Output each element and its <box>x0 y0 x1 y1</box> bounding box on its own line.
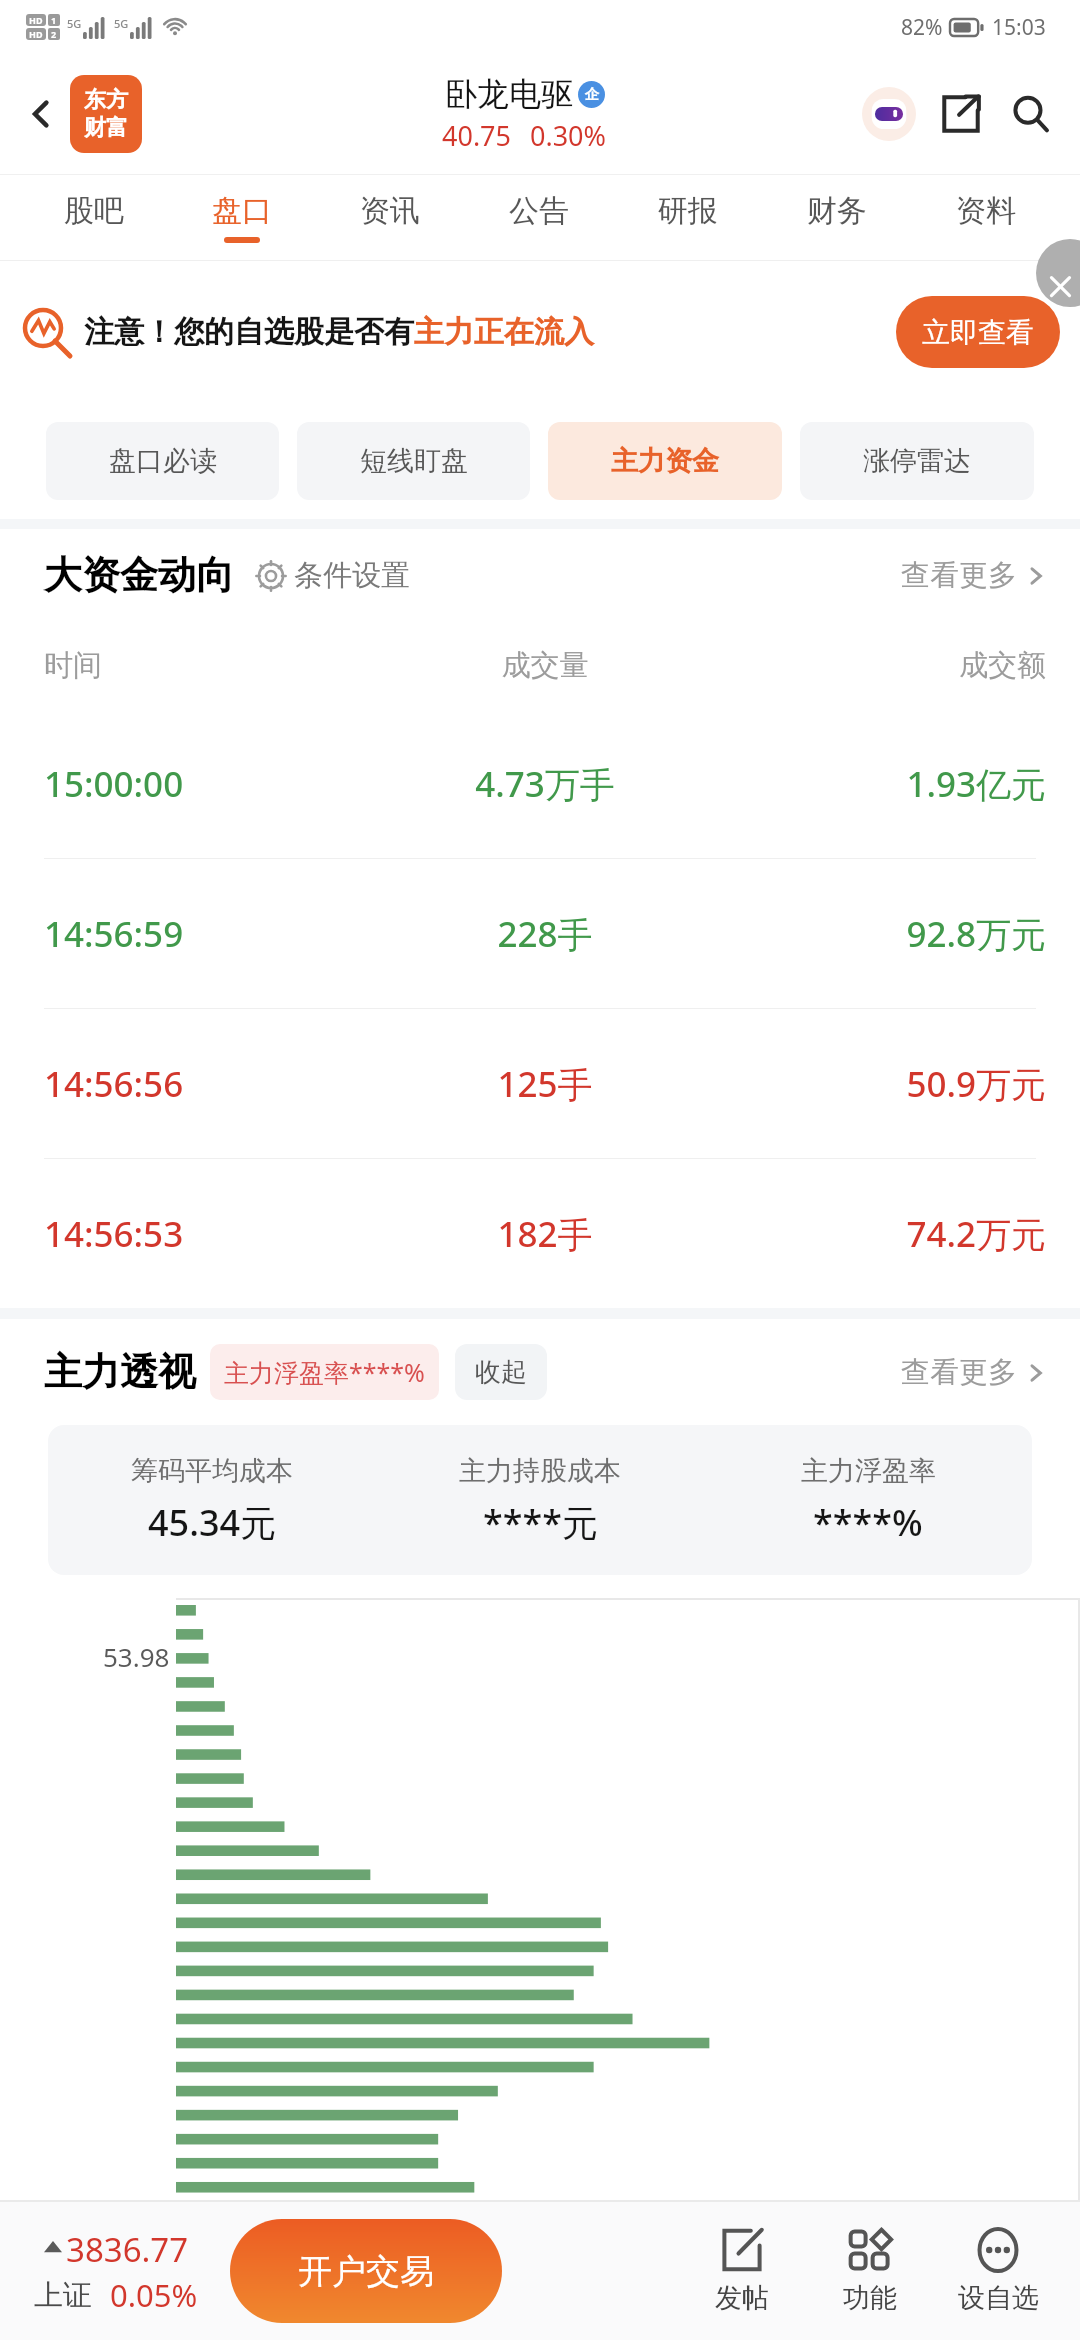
button[interactable]: 15:00:00 <box>0 709 1080 858</box>
staticText: 上证 <box>34 2277 92 2314</box>
button[interactable]: 短线盯盘 <box>297 422 530 500</box>
button[interactable]: 公告 <box>464 175 613 260</box>
staticText: HD <box>29 14 43 26</box>
button[interactable]: 发帖 <box>678 2202 806 2340</box>
staticText: 大资金动向 <box>44 551 234 599</box>
button[interactable]: 14:56:53 <box>0 1159 1080 1308</box>
button[interactable]: Search <box>1000 83 1062 145</box>
staticText: 股吧 <box>64 192 124 230</box>
button[interactable]: 3836.77 <box>34 2227 198 2316</box>
staticText: 资讯 <box>360 192 420 230</box>
button[interactable]: 设自选 <box>934 2202 1062 2340</box>
staticText: 主力资金 <box>611 444 719 478</box>
staticText: 主力正在流入 <box>414 313 594 351</box>
staticText: 4.73万手 <box>378 760 712 808</box>
button[interactable]: 东方财富 <box>70 75 142 153</box>
button[interactable]: 股吧 <box>20 175 168 260</box>
button[interactable]: 盘口必读 <box>46 422 279 500</box>
staticText: 主力浮盈率****% <box>224 1355 425 1389</box>
staticText: 53.98 <box>103 1639 170 1674</box>
staticText: 发帖 <box>715 2281 769 2315</box>
button[interactable]: 14:56:56 <box>0 1009 1080 1158</box>
staticText: 0.30% <box>530 117 607 154</box>
staticText: 228手 <box>378 910 712 958</box>
button[interactable]: 财务 <box>762 175 911 260</box>
button[interactable]: Share <box>930 83 992 145</box>
button[interactable]: 14:56:59 <box>0 859 1080 1008</box>
staticText: 5G <box>114 16 129 31</box>
staticText: 2 <box>51 28 57 40</box>
staticText: 14:56:59 <box>44 910 378 958</box>
staticText: 涨停雷达 <box>863 444 971 478</box>
staticText: 收起 <box>475 1356 527 1389</box>
staticText: 40.75 <box>442 117 512 154</box>
staticText: 开户交易 <box>298 2250 434 2293</box>
staticText: 15:03 <box>992 13 1046 42</box>
staticText: 92.8万元 <box>712 910 1046 958</box>
staticText: 企 <box>585 86 599 104</box>
staticText: 82% <box>901 13 943 42</box>
staticText: 主力浮盈率 <box>801 1454 936 1488</box>
staticText: 研报 <box>658 192 718 230</box>
button[interactable]: 主力资金 <box>548 422 782 500</box>
staticText: 主力透视 <box>44 1348 196 1396</box>
button[interactable]: 条件设置 <box>256 557 410 594</box>
button[interactable]: 查看更多 <box>901 1354 1046 1391</box>
staticText: 卧龙电驱 <box>445 74 573 114</box>
staticText: 查看更多 <box>901 557 1017 594</box>
button[interactable]: 查看更多 <box>901 557 1046 594</box>
staticText: 3836.77 <box>66 2227 189 2272</box>
button[interactable]: 资讯 <box>316 175 464 260</box>
staticText: 东方 <box>84 86 128 114</box>
staticText: 立即查看 <box>922 315 1034 350</box>
button[interactable]: 开户交易 <box>230 2219 502 2323</box>
staticText: 条件设置 <box>294 557 410 594</box>
button[interactable]: 筹码平均成本 <box>48 1425 1032 1575</box>
staticText: 公告 <box>509 192 569 230</box>
button[interactable]: AI助手 <box>858 83 920 145</box>
staticText: 182手 <box>378 1210 712 1258</box>
button[interactable]: 盘口 <box>168 175 316 260</box>
staticText: 注意！您的自选股是否有 <box>84 313 414 351</box>
staticText: 主力持股成本 <box>459 1454 621 1488</box>
staticText: 成交量 <box>378 647 712 684</box>
staticText: 盘口必读 <box>109 444 217 478</box>
staticText: 5G <box>67 16 82 31</box>
staticText: 14:56:56 <box>44 1060 378 1108</box>
staticText: 时间 <box>44 647 378 684</box>
staticText: 财富 <box>84 114 128 142</box>
staticText: 财务 <box>807 192 867 230</box>
staticText: 45.34元 <box>148 1498 277 1547</box>
button[interactable]: 关闭 <box>1036 239 1080 307</box>
staticText: 1.93亿元 <box>712 760 1046 808</box>
staticText: 50.9万元 <box>712 1060 1046 1108</box>
staticText: 设自选 <box>958 2281 1039 2315</box>
staticText: 短线盯盘 <box>360 444 468 478</box>
staticText: 资料 <box>956 192 1016 230</box>
staticText: HD <box>29 28 43 40</box>
button[interactable]: 涨停雷达 <box>800 422 1034 500</box>
staticText: 查看更多 <box>901 1354 1017 1391</box>
staticText: 15:00:00 <box>44 760 378 808</box>
staticText: ****元 <box>483 1498 598 1547</box>
button[interactable]: 立即查看 <box>896 296 1060 368</box>
staticText: 14:56:53 <box>44 1210 378 1258</box>
button[interactable]: 主力浮盈率****% <box>210 1344 439 1400</box>
staticText: 成交额 <box>712 647 1046 684</box>
button[interactable]: 功能 <box>806 2202 934 2340</box>
staticText: 74.2万元 <box>712 1210 1046 1258</box>
staticText: 功能 <box>843 2281 897 2315</box>
button[interactable]: Back <box>14 87 68 141</box>
staticText: 1 <box>51 14 57 26</box>
button[interactable]: 注意！您的自选股是否有 <box>0 261 1080 403</box>
staticText: 筹码平均成本 <box>131 1454 293 1488</box>
staticText: ****% <box>813 1498 923 1547</box>
staticText: 0.05% <box>110 2274 198 2316</box>
button[interactable]: 研报 <box>613 175 762 260</box>
button[interactable]: 收起 <box>455 1344 547 1400</box>
staticText: 盘口 <box>212 192 272 230</box>
staticText: 125手 <box>378 1060 712 1108</box>
button[interactable]: 资料 <box>911 175 1060 260</box>
